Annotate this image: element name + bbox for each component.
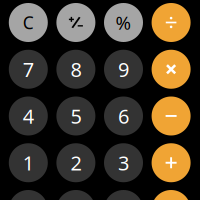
staticText: 1 bbox=[23, 149, 34, 176]
staticText: C bbox=[23, 11, 34, 34]
button[interactable]: Multiply bbox=[152, 50, 191, 89]
button[interactable]: 1 bbox=[9, 143, 48, 182]
button[interactable]: Clear bbox=[9, 3, 48, 42]
button[interactable]: . bbox=[56, 190, 95, 200]
button[interactable]: 7 bbox=[9, 50, 48, 89]
staticText: 3 bbox=[118, 149, 129, 176]
button[interactable]: 4 bbox=[9, 96, 48, 135]
button[interactable]: 8 bbox=[56, 50, 95, 89]
staticText: 6 bbox=[118, 103, 129, 129]
staticText: 9 bbox=[118, 56, 129, 83]
button[interactable]: 3 bbox=[104, 143, 143, 182]
button[interactable]: 2 bbox=[56, 143, 95, 182]
button[interactable]: Toggle sign bbox=[56, 3, 95, 42]
staticText: 5 bbox=[70, 103, 81, 129]
button[interactable]: Subtract bbox=[152, 96, 191, 135]
staticText: 2 bbox=[70, 149, 81, 176]
staticText: % bbox=[115, 10, 131, 35]
button[interactable]: 5 bbox=[56, 96, 95, 135]
button[interactable]: 0 bbox=[9, 190, 48, 200]
staticText: 7 bbox=[23, 56, 34, 83]
button[interactable]: 9 bbox=[104, 50, 143, 89]
button[interactable]: 6 bbox=[104, 96, 143, 135]
button[interactable]: Add bbox=[152, 143, 191, 182]
button[interactable]: Divide bbox=[152, 3, 191, 42]
button[interactable]: Equals bbox=[152, 190, 191, 200]
staticText: 4 bbox=[23, 103, 34, 129]
staticText: 8 bbox=[70, 56, 81, 83]
button[interactable]: Percent bbox=[104, 3, 143, 42]
button[interactable]: Backspace bbox=[104, 190, 143, 200]
